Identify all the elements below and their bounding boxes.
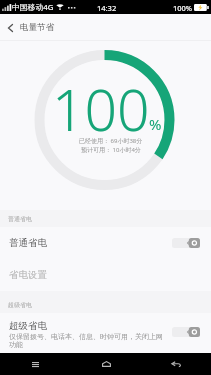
staticText: 100% bbox=[173, 3, 193, 13]
button[interactable]: Back bbox=[0, 14, 20, 41]
button[interactable]: Toggle bbox=[172, 327, 200, 337]
staticText: 省电设置 bbox=[9, 269, 47, 281]
button[interactable]: 省电设置 bbox=[0, 259, 211, 291]
button[interactable]: Home bbox=[71, 353, 141, 375]
staticText: 超级省电 bbox=[9, 320, 47, 332]
staticText: 已经使用： 69小时38分 bbox=[79, 137, 143, 145]
staticText: 仅保留拨号、电话本、信息、时钟可用，关闭上网功能 bbox=[9, 332, 163, 349]
staticText: 超级省电 bbox=[8, 301, 32, 309]
button[interactable]: Back bbox=[141, 353, 211, 375]
staticText: 100 bbox=[52, 70, 150, 148]
button[interactable]: Toggle bbox=[172, 238, 200, 248]
staticText: 普通省电 bbox=[8, 215, 32, 223]
staticText: 普通省电 bbox=[9, 237, 47, 249]
staticText: 电量节省 bbox=[20, 22, 54, 33]
staticText: 14:32 bbox=[97, 3, 117, 13]
button[interactable]: Menu bbox=[0, 353, 71, 375]
button[interactable]: 普通省电 bbox=[0, 227, 211, 259]
staticText: 预计可用： 10小时4分 bbox=[81, 146, 141, 154]
staticText: 中国移动4G bbox=[12, 2, 54, 13]
staticText: % bbox=[149, 114, 162, 134]
button[interactable]: 超级省电 bbox=[0, 314, 211, 353]
